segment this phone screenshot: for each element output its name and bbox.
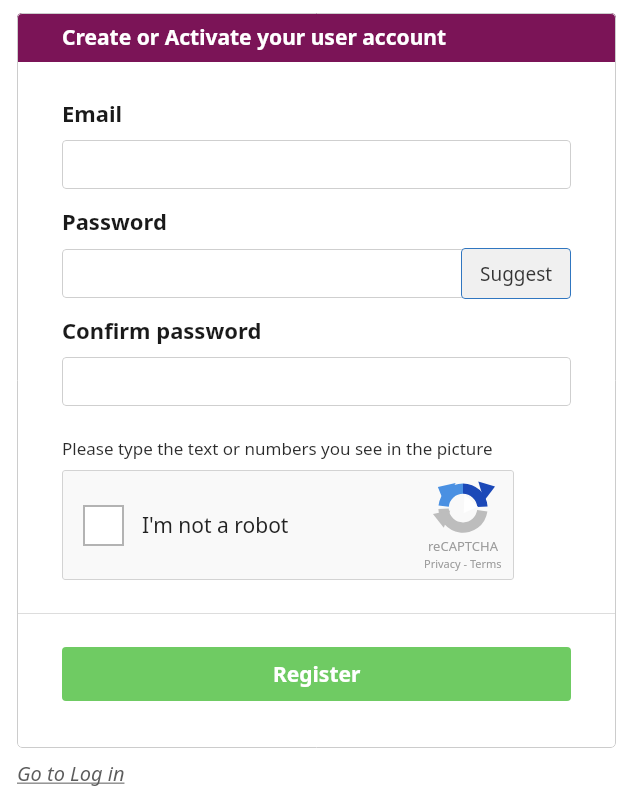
staticText: I'm not a robot — [142, 511, 289, 540]
staticText: Create or Activate your user account — [62, 23, 447, 52]
button[interactable] — [62, 249, 571, 298]
button[interactable]: I'm not a robot checkbox — [83, 505, 124, 546]
staticText: reCAPTCHA — [428, 537, 498, 555]
staticText: Suggest — [480, 261, 553, 287]
staticText: Please type the text or numbers you see … — [62, 437, 493, 460]
button[interactable]: I'm not a robot checkbox — [62, 470, 514, 580]
staticText: Privacy - Terms — [424, 556, 502, 571]
staticText: Password — [62, 206, 167, 236]
staticText: Register — [273, 660, 361, 689]
button[interactable]: Suggest — [461, 248, 571, 299]
button[interactable]: Register — [62, 647, 571, 701]
button[interactable]: Go to Log in — [17, 760, 125, 787]
button[interactable] — [62, 140, 571, 189]
button[interactable] — [62, 357, 571, 406]
staticText: Go to Log in — [17, 760, 125, 787]
staticText: Confirm password — [62, 315, 262, 345]
staticText: Email — [62, 98, 123, 128]
